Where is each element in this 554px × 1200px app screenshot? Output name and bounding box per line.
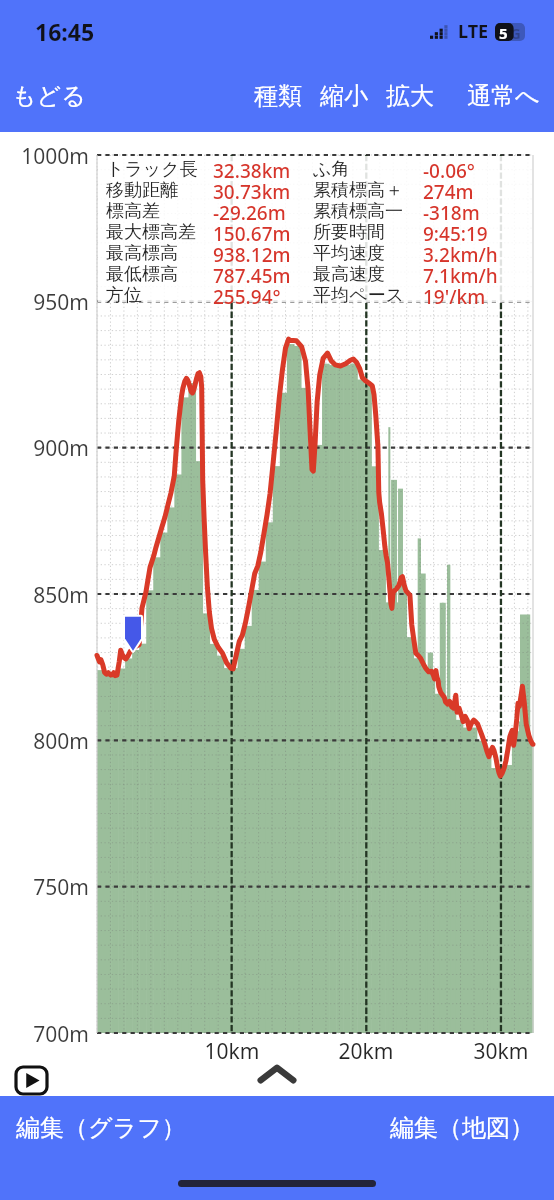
staticText: 方位 (106, 284, 213, 305)
staticText: ふ角 (313, 158, 423, 179)
staticText: 最低標高 (106, 263, 213, 284)
button[interactable]: Expand (255, 1061, 299, 1087)
staticText: 最高速度 (313, 263, 423, 284)
button[interactable]: 編集（地図） (370, 1105, 554, 1151)
staticText: 938.12m (213, 242, 313, 263)
staticText: 800m (0, 727, 89, 756)
staticText: 1000m (0, 142, 89, 171)
staticText: -0.06° (423, 158, 518, 179)
staticText: 最大標高差 (106, 221, 213, 242)
staticText: 787.45m (213, 263, 313, 284)
staticText: 274m (423, 179, 518, 200)
staticText: 移動距離 (106, 179, 213, 200)
staticText: 850m (0, 581, 89, 610)
staticText: 750m (0, 873, 89, 902)
staticText: 700m (0, 1020, 89, 1049)
staticText: 16:45 (35, 16, 95, 47)
staticText: 編集（地図） (390, 1113, 534, 1143)
staticText: 7.1km/h (423, 263, 518, 284)
staticText: -318m (423, 200, 518, 221)
staticText: LTE (458, 19, 489, 44)
button[interactable]: 縮小 (311, 75, 377, 117)
staticText: 19'/km (423, 284, 518, 305)
button[interactable]: もどる (0, 75, 98, 117)
staticText: 拡大 (386, 81, 434, 111)
staticText: 32.38km (213, 158, 313, 179)
staticText: G (510, 23, 521, 41)
button[interactable]: 編集（グラフ） (0, 1105, 202, 1151)
button[interactable]: 種類 (245, 75, 311, 117)
staticText: 900m (0, 434, 89, 463)
staticText: トラック長 (106, 158, 213, 179)
staticText: 標高差 (106, 200, 213, 221)
staticText: -29.26m (213, 200, 313, 221)
staticText: 縮小 (320, 81, 368, 111)
staticText: 最高標高 (106, 242, 213, 263)
button[interactable]: 通常へ (459, 75, 554, 117)
staticText: もどる (12, 81, 86, 111)
staticText: 平均ペース (313, 284, 423, 305)
staticText: 20km (326, 1037, 406, 1066)
staticText: 通常へ (467, 81, 540, 111)
staticText: 10km (192, 1037, 272, 1066)
staticText: 255.94° (213, 284, 313, 305)
staticText: 30.73km (213, 179, 313, 200)
staticText: 累積標高一 (313, 200, 423, 221)
staticText: 種類 (254, 81, 302, 111)
button[interactable]: 拡大 (377, 75, 443, 117)
staticText: 3.2km/h (423, 242, 518, 263)
button[interactable]: Play (16, 1067, 47, 1094)
staticText: 30km (461, 1037, 541, 1066)
staticText: 平均速度 (313, 242, 423, 263)
staticText: 9:45:19 (423, 221, 518, 242)
staticText: 950m (0, 288, 89, 317)
staticText: 5 (499, 23, 508, 41)
staticText: 累積標高＋ (313, 179, 423, 200)
staticText: 所要時間 (313, 221, 423, 242)
staticText: 編集（グラフ） (16, 1113, 186, 1143)
staticText: 150.67m (213, 221, 313, 242)
